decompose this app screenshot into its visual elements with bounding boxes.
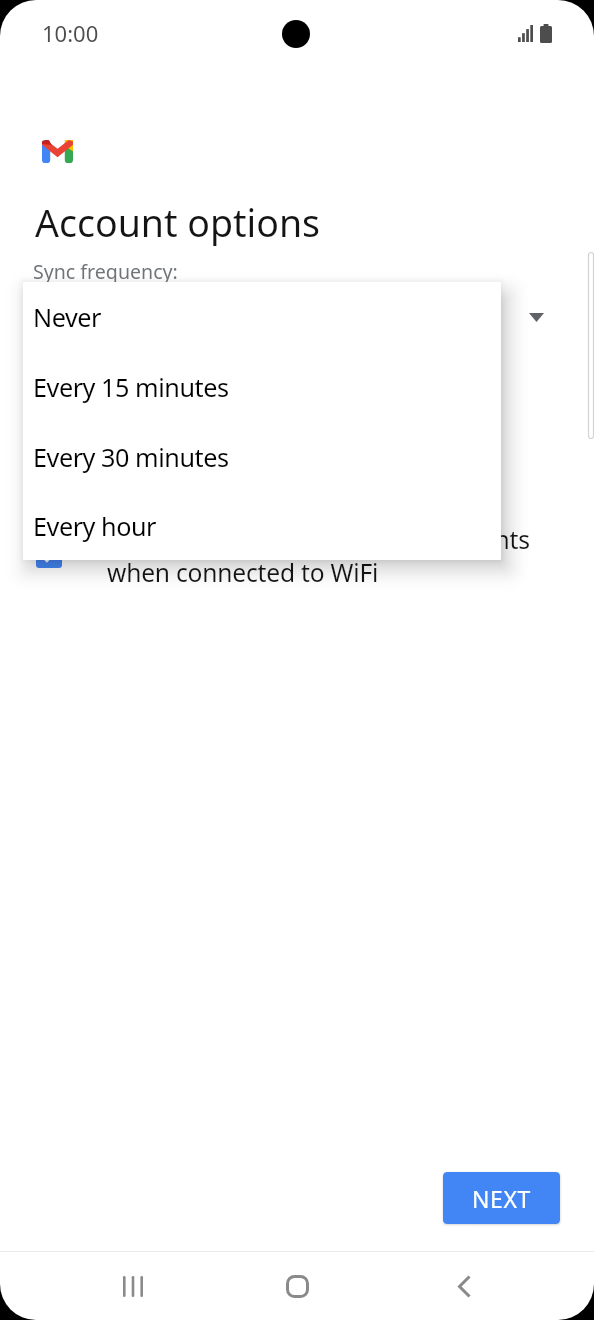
button[interactable]: Recent apps [102, 1255, 164, 1317]
staticText: NEXT [472, 1183, 531, 1214]
staticText: Every hour [33, 509, 157, 543]
button[interactable]: NEXT [443, 1172, 560, 1224]
button[interactable]: Every hour [23, 492, 501, 560]
staticText: Every 30 minutes [33, 440, 229, 474]
staticText: Automatically download attachments when … [107, 523, 530, 589]
staticText: Never [33, 300, 101, 334]
button[interactable]: Automatically download attachments when … [0, 515, 594, 605]
staticText: Every 15 minutes [33, 370, 229, 404]
button[interactable]: Back [430, 1255, 492, 1317]
button[interactable]: Every 15 minutes [0, 296, 594, 340]
staticText: Every 15 minutes [35, 301, 233, 335]
staticText: 10:00 [42, 18, 99, 48]
button[interactable]: Every 30 minutes [23, 422, 501, 492]
button[interactable]: Home [266, 1255, 328, 1317]
button[interactable]: Every 15 minutes [23, 352, 501, 422]
staticText: Account options [35, 197, 321, 248]
staticText: Sync frequency: [33, 258, 178, 285]
button[interactable]: Never [23, 282, 501, 352]
